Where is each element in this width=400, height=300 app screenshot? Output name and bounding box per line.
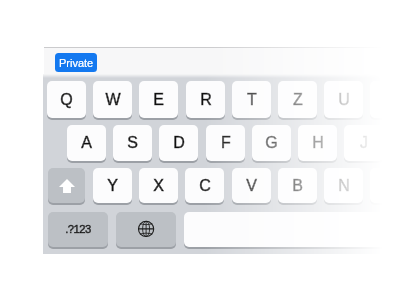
staticText: E [153,91,164,109]
staticText: H [312,134,324,152]
staticText: C [199,177,211,195]
staticText: F [221,134,231,152]
staticText: T [247,91,257,109]
staticText: U [338,91,350,109]
staticText: G [265,134,278,152]
button[interactable]: Private [55,53,97,72]
staticText: .?123 [65,223,91,236]
staticText: Y [107,177,118,195]
staticText: W [105,91,121,109]
button[interactable]: H [298,125,337,163]
button[interactable]: G [252,125,291,163]
staticText: F [221,134,231,152]
button[interactable]: U [324,81,363,120]
staticText: H [312,134,324,152]
button[interactable]: Q [47,81,86,120]
staticText: S [127,134,138,152]
staticText: J [360,134,368,152]
staticText: E [153,91,164,109]
staticText: X [153,177,164,195]
staticText: B [292,177,303,195]
button[interactable]: C [185,168,224,205]
staticText: N [338,177,350,195]
staticText: N [338,177,350,195]
button[interactable]: X [139,168,178,205]
button[interactable]: S [113,125,152,163]
button[interactable]: Shift [48,168,85,205]
staticText: Private [59,57,94,69]
staticText: D [173,134,185,152]
staticText: U [338,91,350,109]
staticText: J [360,134,368,152]
staticText: W [105,91,121,109]
staticText: V [246,177,257,195]
staticText: Y [107,177,118,195]
button[interactable]: T [232,81,271,120]
button[interactable]: V [232,168,271,205]
button[interactable]: D [159,125,198,163]
button[interactable]: Z [278,81,317,120]
button[interactable]: Space [184,212,400,249]
staticText: C [199,177,211,195]
staticText: B [292,177,303,195]
staticText: Z [293,91,303,109]
staticText: V [246,177,257,195]
staticText: Q [60,91,73,109]
button[interactable]: R [186,81,225,120]
button[interactable]: E [139,81,178,120]
staticText: A [81,134,92,152]
button[interactable]: W [93,81,132,120]
button[interactable]: F [206,125,245,163]
staticText: R [200,91,212,109]
button[interactable]: Next keyboard [116,212,176,249]
button[interactable]: .?123 [48,212,108,249]
staticText: A [81,134,92,152]
button[interactable]: Y [93,168,132,205]
staticText: Q [60,91,73,109]
button[interactable]: J [344,125,383,163]
staticText: Z [293,91,303,109]
button[interactable]: N [324,168,363,205]
staticText: D [173,134,185,152]
staticText: G [265,134,278,152]
staticText: X [153,177,164,195]
button[interactable]: B [278,168,317,205]
staticText: T [247,91,257,109]
staticText: S [127,134,138,152]
button[interactable]: A [67,125,106,163]
staticText: .?123 [65,223,91,236]
staticText: R [200,91,212,109]
